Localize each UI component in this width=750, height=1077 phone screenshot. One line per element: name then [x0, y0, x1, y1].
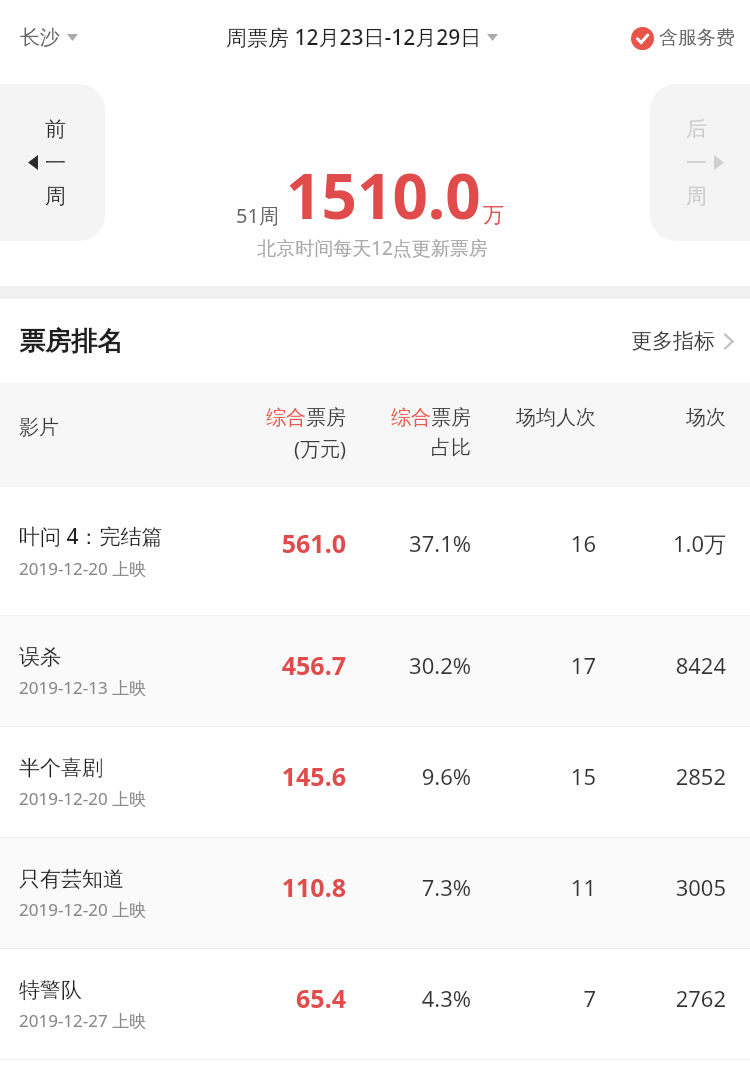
staticText: 7 [583, 983, 596, 1013]
staticText: 3005 [675, 872, 726, 902]
staticText: 2852 [675, 761, 726, 791]
staticText: 半个喜剧 [19, 755, 103, 781]
button[interactable]: 后一周 [650, 84, 750, 241]
staticText: 票房排名 [19, 325, 123, 358]
staticText: 37.1% [409, 528, 471, 558]
staticText: 2019-12-27 上映 [19, 1009, 147, 1032]
staticText: 影片 [19, 415, 59, 440]
staticText: 周票房 12月23日-12月29日 [226, 23, 482, 52]
staticText: 65.4 [296, 981, 346, 1015]
staticText: 456.7 [281, 648, 346, 682]
staticText: 2019-12-20 上映 [19, 787, 147, 810]
staticText: 误杀 [19, 644, 61, 670]
staticText: 110.8 [281, 870, 346, 904]
button[interactable]: 周票房 12月23日-12月29日 [224, 19, 500, 56]
staticText: 长沙 [20, 25, 60, 50]
staticText: 更多指标 [631, 328, 715, 354]
staticText: 1510.0 [286, 153, 481, 237]
staticText: 后 一 周 [686, 116, 707, 209]
staticText: 特警队 [19, 977, 82, 1003]
staticText: 30.2% [409, 650, 471, 680]
staticText: 综合票房 (万元) [266, 405, 346, 461]
staticText: 2762 [675, 983, 726, 1013]
staticText: 前 一 周 [45, 116, 66, 209]
button[interactable]: 含服务费 [628, 22, 738, 54]
staticText: 只有芸知道 [19, 866, 124, 892]
button[interactable]: 更多指标 [625, 320, 740, 362]
button[interactable]: 长沙 [16, 19, 82, 56]
staticText: 综合票房 占比 [391, 405, 471, 460]
button[interactable]: 误杀 [0, 616, 750, 726]
staticText: 2019-12-20 上映 [19, 557, 147, 580]
staticText: 9.6% [421, 761, 471, 791]
staticText: 4.3% [421, 983, 471, 1013]
staticText: 叶问 4：完结篇 [19, 522, 163, 551]
staticText: 11 [570, 872, 596, 902]
staticText: 16 [570, 528, 596, 558]
button[interactable]: 叶问 4：完结篇 [0, 487, 750, 615]
staticText: 2019-12-20 上映 [19, 898, 147, 921]
staticText: 17 [570, 650, 596, 680]
staticText: 2019-12-13 上映 [19, 676, 147, 699]
staticText: 含服务费 [659, 26, 735, 50]
button[interactable]: 半个喜剧 [0, 727, 750, 837]
button[interactable]: 只有芸知道 [0, 838, 750, 948]
staticText: 万 [483, 202, 504, 228]
staticText: 场次 [686, 405, 726, 430]
staticText: 8424 [675, 650, 726, 680]
button[interactable]: 前一周 [0, 84, 105, 241]
staticText: 145.6 [281, 759, 346, 793]
button[interactable]: 特警队 [0, 949, 750, 1059]
staticText: 场均人次 [516, 405, 596, 430]
staticText: 7.3% [421, 872, 471, 902]
staticText: 51周 [236, 202, 279, 229]
staticText: 561.0 [281, 526, 346, 560]
staticText: 1.0万 [672, 528, 726, 558]
staticText: 北京时间每天12点更新票房 [257, 235, 488, 261]
staticText: 15 [570, 761, 596, 791]
